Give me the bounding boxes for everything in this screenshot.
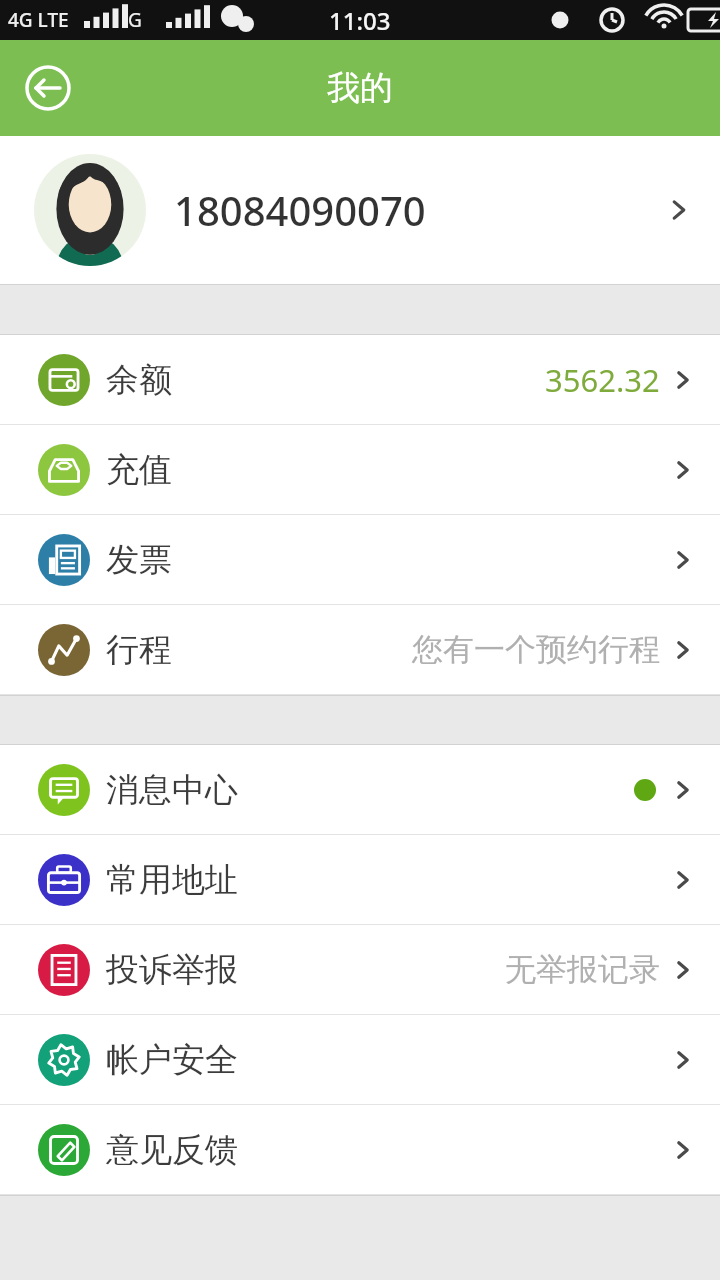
- staticText: 3562.32: [545, 359, 660, 401]
- button[interactable]: 帐户安全: [0, 1015, 720, 1104]
- button[interactable]: 投诉举报: [0, 925, 720, 1014]
- staticText: 我的: [327, 67, 393, 109]
- button[interactable]: 充值: [0, 425, 720, 514]
- button[interactable]: Back: [16, 56, 80, 120]
- staticText: 帐户安全: [106, 1039, 238, 1081]
- staticText: 18084090070: [174, 183, 426, 237]
- button[interactable]: 常用地址: [0, 835, 720, 924]
- button[interactable]: 消息中心: [0, 745, 720, 834]
- staticText: 消息中心: [106, 769, 238, 811]
- button[interactable]: 18084090070: [0, 136, 720, 284]
- button[interactable]: 行程: [0, 605, 720, 694]
- button[interactable]: 发票: [0, 515, 720, 604]
- staticText: 发票: [106, 539, 172, 581]
- staticText: 常用地址: [106, 859, 238, 901]
- staticText: G: [128, 7, 142, 33]
- staticText: 11:03: [329, 4, 391, 37]
- staticText: 投诉举报: [106, 949, 238, 991]
- staticText: 余额: [106, 359, 172, 401]
- staticText: 意见反馈: [106, 1129, 238, 1171]
- staticText: 无举报记录: [505, 950, 660, 989]
- button[interactable]: 意见反馈: [0, 1105, 720, 1194]
- button[interactable]: 余额: [0, 335, 720, 424]
- staticText: 充值: [106, 449, 172, 491]
- staticText: 4G LTE: [8, 7, 69, 33]
- staticText: 您有一个预约行程: [412, 630, 660, 669]
- staticText: 行程: [106, 629, 172, 671]
